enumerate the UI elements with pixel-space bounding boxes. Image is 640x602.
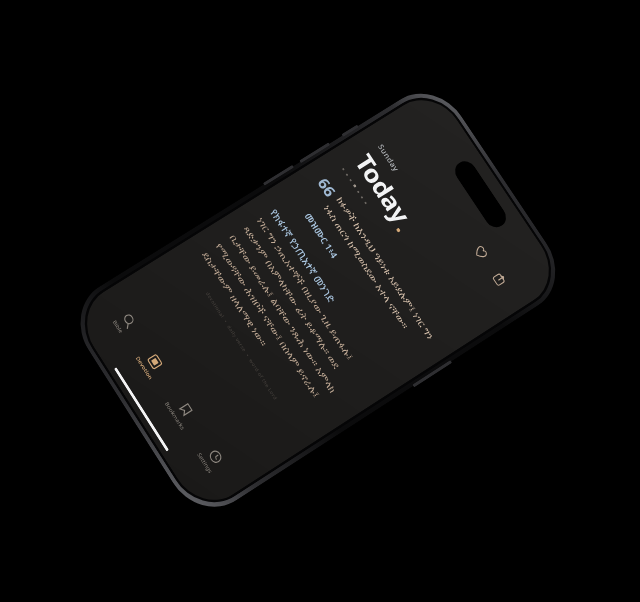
button[interactable]: Favourite xyxy=(463,234,499,270)
button[interactable]: Bookmarks xyxy=(156,384,207,439)
staticText: መዝሙር 1፥4 xyxy=(302,211,341,260)
button[interactable]: Settings xyxy=(189,435,234,482)
staticText: ክፉዎች ከእንዲህ ዓይነቱ አይደሉም፤ ነገር ግን ነፋስ ጠርጎ ከሚ… xyxy=(321,194,439,353)
staticText: Today xyxy=(348,148,418,229)
staticText: Bookmarks xyxy=(163,401,186,432)
staticText: Settings xyxy=(195,452,214,475)
staticText: የክፋተኛ የኃጢአተኛ መንገድ xyxy=(267,207,338,305)
button[interactable]: Bible xyxy=(104,302,145,343)
staticText: Sunday xyxy=(376,142,402,173)
staticText: Devotion xyxy=(134,355,154,381)
button[interactable]: Share xyxy=(481,261,517,298)
staticText: 66 xyxy=(313,174,340,200)
staticText: ነገር ግን ኃጢአተኞች በዚያው ጊዜ ይጠፋሉ፤ ጻድቃንም በአምላካቸ… xyxy=(199,215,373,422)
staticText: Bible xyxy=(111,319,125,335)
staticText: devotional • daily verse • word of the L… xyxy=(174,245,309,448)
button[interactable]: Devotion xyxy=(127,339,174,388)
